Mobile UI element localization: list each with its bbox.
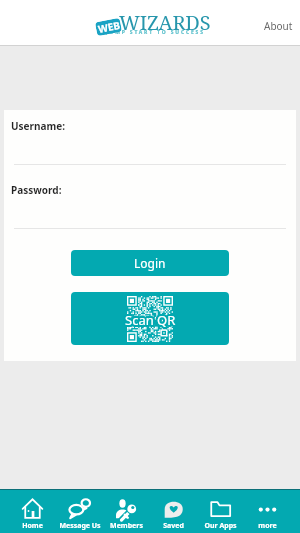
staticText: Scan QR <box>126 310 177 328</box>
staticText: WEB <box>97 18 121 36</box>
staticText: Scan QR <box>123 310 174 328</box>
staticText: JUMP START TO SUCCESS <box>106 29 205 36</box>
staticText: Scan QR <box>127 311 178 329</box>
staticText: Login <box>134 255 166 271</box>
staticText: Scan QR <box>125 313 176 331</box>
staticText: Members <box>110 521 143 531</box>
staticText: Scan QR <box>123 312 174 330</box>
staticText: Password: <box>11 183 62 197</box>
button[interactable]: Scan QR <box>71 292 229 345</box>
button[interactable]: Login <box>71 250 229 276</box>
staticText: Saved <box>163 521 184 531</box>
staticText: more <box>258 521 277 531</box>
staticText: Scan QR <box>126 312 177 330</box>
staticText: Scan QR <box>124 312 175 330</box>
staticText: Scan QR <box>124 311 175 329</box>
staticText: Scan QR <box>124 309 175 327</box>
staticText: Scan QR <box>125 311 176 329</box>
staticText: About <box>264 19 293 33</box>
button[interactable]: Message Us <box>56 490 103 533</box>
staticText: Scan QR <box>123 311 174 329</box>
staticText: Scan QR <box>126 309 177 327</box>
staticText: Scan QR <box>124 313 175 331</box>
staticText: Username: <box>11 119 66 133</box>
button[interactable]: Home <box>8 490 56 533</box>
staticText: Scan QR <box>125 311 176 329</box>
staticText: Scan QR <box>125 309 176 327</box>
button[interactable]: About <box>250 11 300 41</box>
staticText: Our Apps <box>204 521 237 531</box>
staticText: Scan QR <box>124 310 175 328</box>
staticText: Scan QR <box>127 312 178 330</box>
button[interactable]: Our Apps <box>197 490 244 533</box>
staticText: Message Us <box>59 521 101 531</box>
button[interactable]: more <box>244 490 291 533</box>
staticText: Scan QR <box>126 313 177 331</box>
staticText: Scan QR <box>125 310 176 328</box>
staticText: WIZARDS <box>119 9 211 36</box>
staticText: Scan QR <box>126 311 177 329</box>
staticText: Scan QR <box>125 312 176 330</box>
staticText: Home <box>22 521 43 531</box>
staticText: Scan QR <box>127 310 178 328</box>
button[interactable]: Saved <box>150 490 197 533</box>
button[interactable]: Members <box>103 490 150 533</box>
